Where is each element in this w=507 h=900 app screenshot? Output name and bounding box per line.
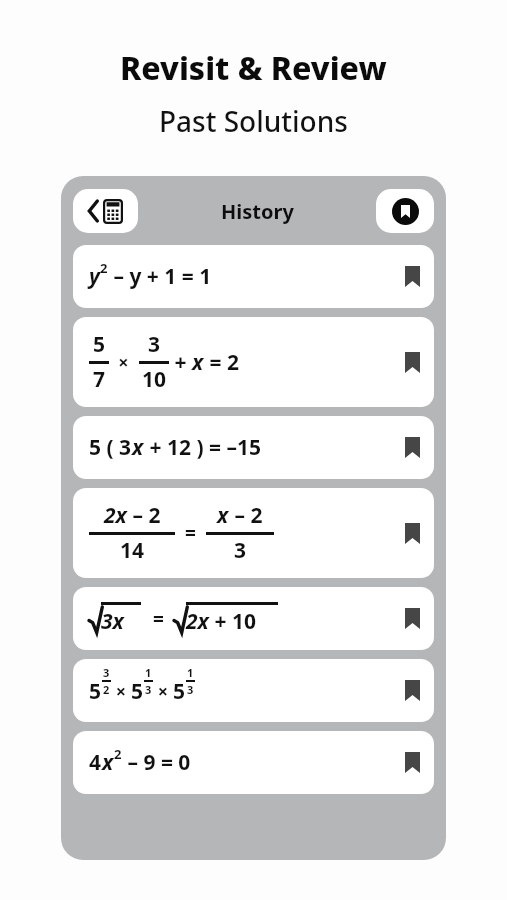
staticText: 10 — [142, 365, 167, 394]
staticText: – 2 — [229, 501, 263, 530]
staticText: × — [111, 679, 131, 704]
staticText: Past Solutions — [159, 102, 348, 140]
staticText: Revisit & Review — [120, 46, 387, 90]
staticText: 3 — [145, 682, 152, 697]
button[interactable]: 3x — [73, 587, 434, 650]
staticText: 1 — [187, 665, 194, 680]
staticText: + — [169, 348, 192, 377]
staticText: 3 — [187, 682, 194, 697]
staticText: 3x — [101, 607, 124, 636]
staticText: History — [221, 198, 294, 225]
staticText: 2 — [114, 745, 122, 763]
staticText: = — [175, 520, 206, 546]
button[interactable]: 5 — [73, 659, 434, 722]
staticText: 5 — [173, 677, 186, 706]
staticText: + 12 ) = –15 — [144, 433, 261, 462]
staticText: – 2 — [127, 501, 161, 530]
staticText: 5 — [93, 330, 106, 359]
staticText: = 2 — [204, 348, 239, 377]
staticText: 2x — [186, 607, 209, 636]
button[interactable]: 5 — [73, 317, 434, 407]
button[interactable]: 2x — [73, 488, 434, 578]
staticText: x — [132, 433, 144, 462]
staticText: 3 — [148, 330, 161, 359]
staticText: + 10 — [209, 607, 256, 636]
staticText: 2 — [100, 259, 108, 277]
staticText: 4 — [89, 748, 102, 777]
staticText: 3 — [234, 536, 247, 565]
staticText: 5 — [89, 677, 102, 706]
staticText: × — [153, 679, 173, 704]
staticText: 2 — [103, 682, 110, 697]
staticText: – 9 = 0 — [122, 748, 191, 777]
staticText: x — [102, 748, 114, 777]
staticText: = — [143, 606, 174, 632]
staticText: 7 — [93, 365, 106, 394]
staticText: 3 — [103, 665, 110, 680]
staticText: 1 — [145, 665, 152, 680]
staticText: 2x — [104, 501, 127, 530]
staticText: × — [109, 350, 139, 375]
button[interactable]: Bookmarked problems — [376, 189, 434, 233]
staticText: y — [89, 262, 100, 291]
staticText: 14 — [120, 536, 145, 565]
button[interactable]: Back to calculator — [73, 189, 138, 233]
button[interactable]: y — [73, 245, 434, 308]
staticText: x — [192, 348, 204, 377]
button[interactable]: 5 ( 3 — [73, 416, 434, 479]
staticText: 5 ( 3 — [89, 433, 132, 462]
staticText: 5 — [131, 677, 144, 706]
button[interactable]: 4 — [73, 731, 434, 794]
staticText: – y + 1 = 1 — [108, 262, 212, 291]
staticText: x — [217, 501, 229, 530]
